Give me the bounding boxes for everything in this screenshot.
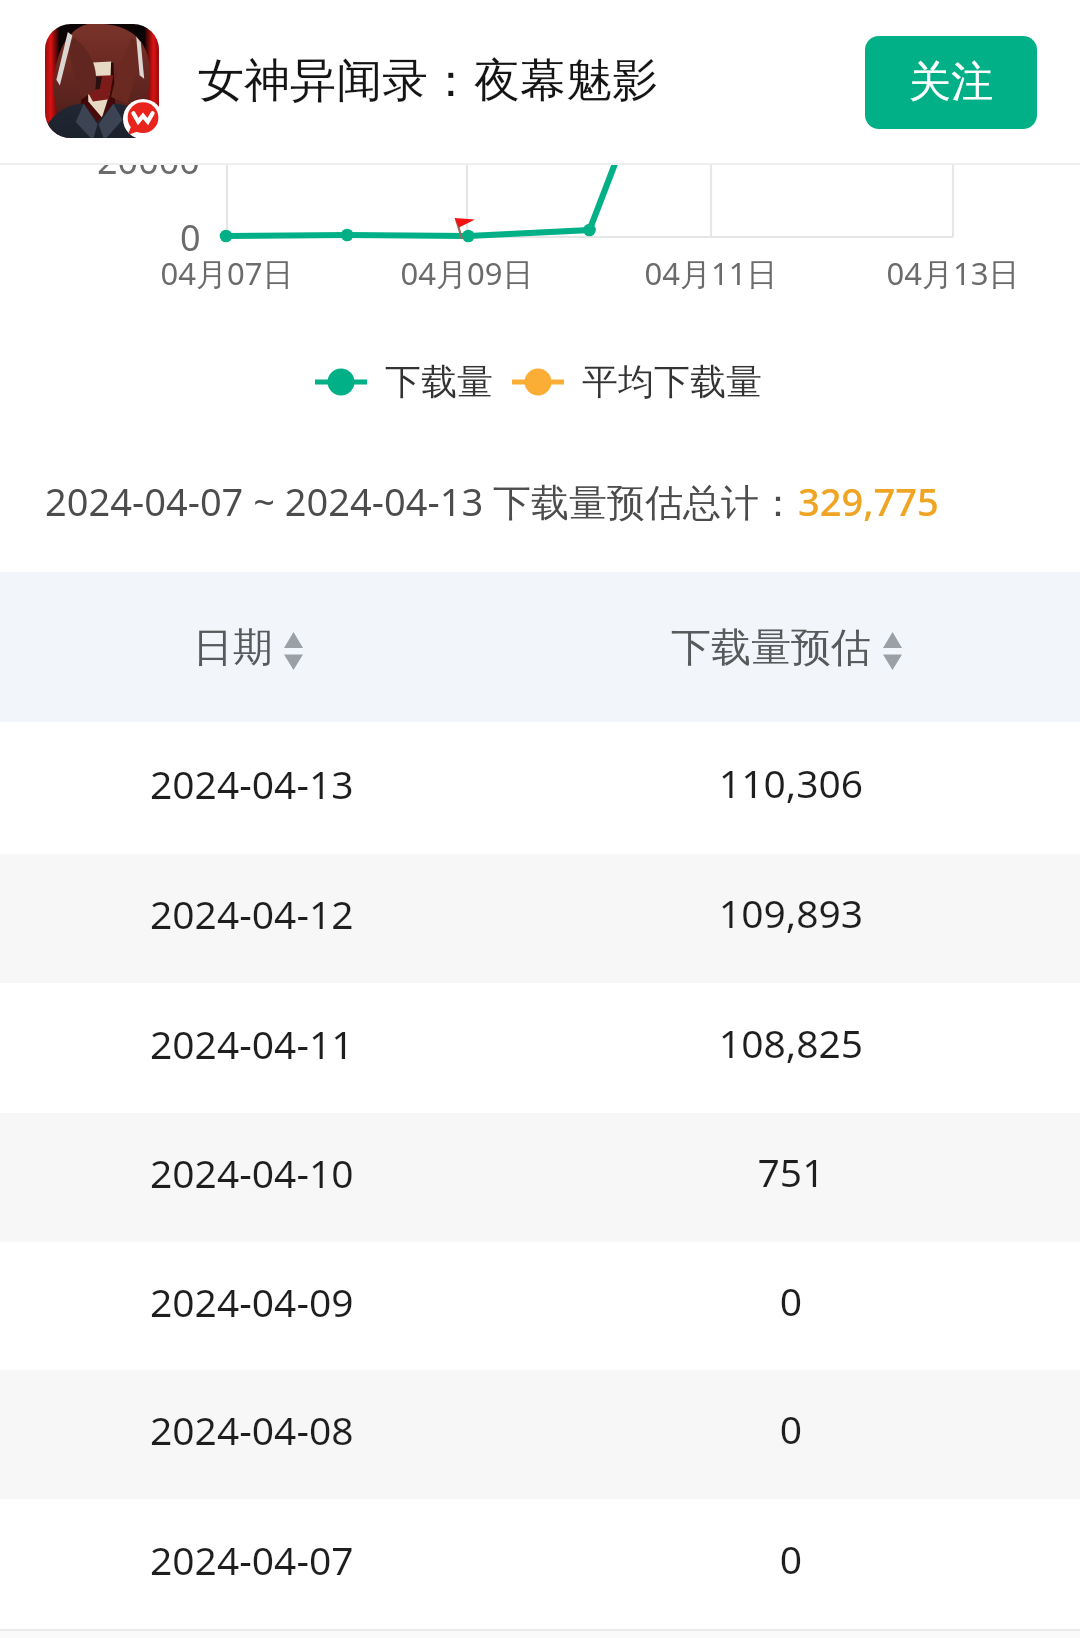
button[interactable]: 2024-04-13 (0, 722, 1080, 854)
staticText: 04月09日 (367, 252, 567, 294)
button[interactable]: 2024-04-08 (0, 1370, 1080, 1499)
staticText: 平均下载量 (582, 359, 762, 404)
staticText: 04月11日 (611, 252, 811, 294)
staticText: 329,775 (798, 475, 939, 527)
staticText: 109,893 (661, 886, 921, 939)
staticText: 女神异闻录：夜幕魅影 (198, 52, 658, 110)
button[interactable]: 下载量 (315, 359, 493, 404)
staticText: 110,306 (661, 756, 921, 809)
button[interactable]: 2024-04-12 (0, 854, 1080, 983)
other: App icon (45, 24, 159, 138)
button[interactable]: 2024-04-07 (0, 1499, 1080, 1629)
staticText: 0 (661, 1402, 921, 1455)
staticText: 关注 (909, 56, 993, 109)
staticText: 20000 (97, 165, 200, 185)
button[interactable]: 日期 (193, 622, 303, 672)
staticText: 108,825 (661, 1016, 921, 1069)
staticText: 下载量 (385, 359, 493, 404)
button[interactable]: 平均下载量 (512, 359, 762, 404)
staticText: 2024-04-07 (150, 1533, 354, 1586)
button[interactable]: 关注 (865, 36, 1037, 129)
staticText: 2024-04-07 ~ 2024-04-13 下载量预估总计： (45, 475, 798, 527)
staticText: 2024-04-09 (150, 1275, 354, 1328)
staticText: 2024-04-08 (150, 1403, 354, 1456)
staticText: 04月07日 (127, 252, 327, 294)
button[interactable]: 2024-04-10 (0, 1113, 1080, 1242)
staticText: 0 (180, 213, 201, 262)
staticText: 0 (661, 1274, 921, 1327)
button[interactable]: 2024-04-09 (0, 1242, 1080, 1370)
button[interactable]: 2024-04-11 (0, 983, 1080, 1113)
button[interactable]: 下载量预估 (671, 622, 902, 672)
staticText: 0 (661, 1532, 921, 1585)
staticText: 日期 (193, 622, 273, 672)
staticText: 2024-04-11 (150, 1017, 354, 1070)
staticText: 下载量预估 (671, 622, 871, 672)
staticText: 04月13日 (853, 252, 1053, 294)
staticText: 2024-04-10 (150, 1146, 354, 1199)
staticText: 751 (661, 1145, 921, 1198)
staticText: 2024-04-12 (150, 887, 354, 940)
staticText: 2024-04-13 (150, 757, 354, 810)
